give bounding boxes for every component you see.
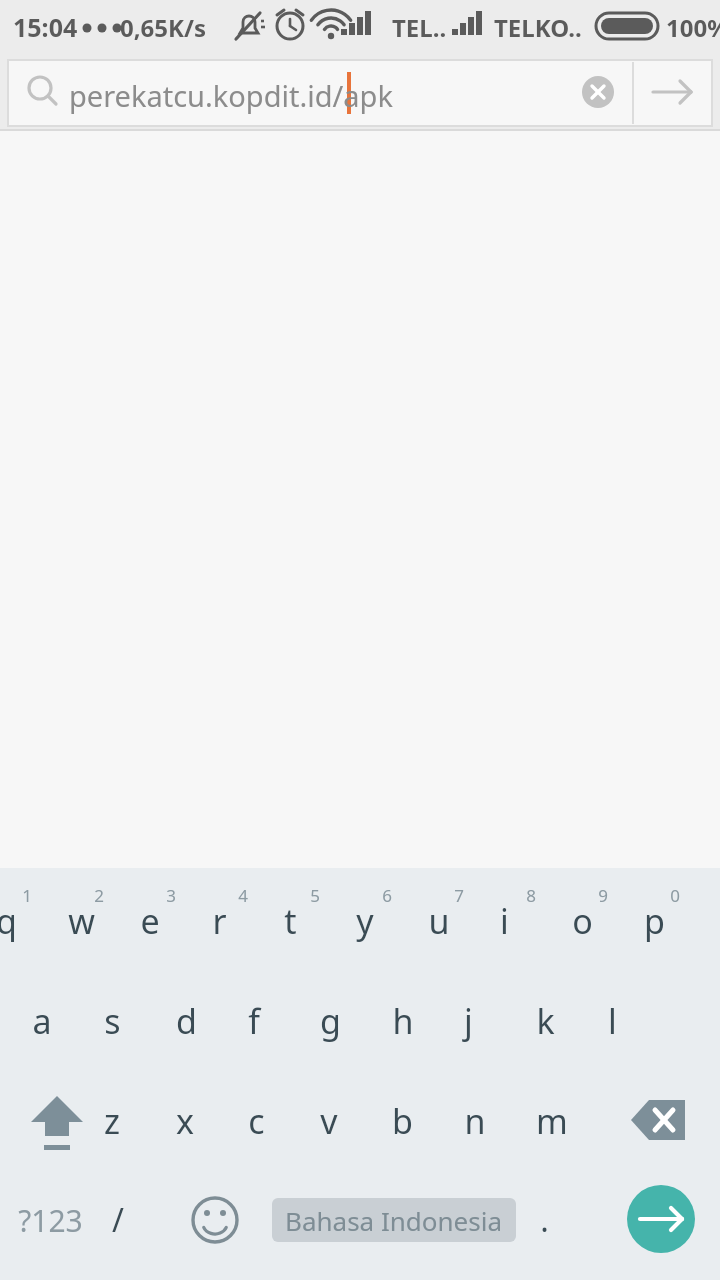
button[interactable] [612, 980, 684, 1072]
staticText: 1 [22, 884, 32, 907]
staticText: g [320, 998, 341, 1044]
button[interactable] [36, 980, 108, 1072]
button[interactable]: Shift [8, 1080, 108, 1168]
staticText: 100% [666, 11, 720, 44]
staticText: 2 [94, 884, 104, 907]
staticText: s [104, 998, 121, 1044]
button[interactable]: Backspace [612, 1080, 712, 1168]
staticText: r [212, 898, 227, 944]
staticText: y [356, 898, 374, 944]
button[interactable] [0, 880, 72, 972]
staticText: w [68, 898, 95, 944]
button[interactable]: Enter [627, 1185, 695, 1253]
staticText: Bahasa Indonesia [285, 1203, 503, 1238]
staticText: / [112, 1198, 124, 1242]
staticText: d [176, 998, 197, 1044]
button[interactable] [540, 1080, 612, 1172]
button[interactable] [216, 880, 288, 972]
staticText: . [540, 1198, 549, 1242]
button[interactable] [108, 1080, 180, 1172]
button[interactable] [540, 1184, 606, 1256]
button[interactable] [252, 1080, 324, 1172]
button[interactable] [0, 60, 640, 126]
button[interactable] [252, 980, 324, 1072]
button[interactable] [144, 880, 216, 972]
button[interactable] [112, 1184, 178, 1256]
staticText: q [0, 898, 17, 944]
staticText: 0 [670, 884, 680, 907]
staticText: b [392, 1098, 413, 1144]
button[interactable] [180, 980, 252, 1072]
staticText: ?123 [18, 1200, 83, 1241]
button[interactable] [72, 880, 144, 972]
button[interactable]: Symbols [12, 1184, 98, 1256]
staticText: 9 [598, 884, 608, 907]
button[interactable]: Emoji [184, 1184, 248, 1256]
staticText: j [464, 998, 473, 1044]
staticText: TELKO.. [494, 11, 582, 44]
staticText: 15:04 [13, 10, 78, 44]
button[interactable] [360, 880, 432, 972]
staticText: 8 [526, 884, 536, 907]
button[interactable] [576, 880, 648, 972]
staticText: 4 [238, 884, 248, 907]
button[interactable] [468, 980, 540, 1072]
staticText: v [320, 1098, 338, 1144]
staticText: 0,65K/s [120, 11, 206, 44]
staticText: n [464, 1098, 486, 1144]
staticText: i [500, 898, 509, 944]
staticText: m [536, 1098, 568, 1144]
button[interactable] [468, 1080, 540, 1172]
staticText: z [104, 1098, 120, 1144]
staticText: 7 [454, 884, 464, 907]
button[interactable] [432, 880, 504, 972]
staticText: 3 [166, 884, 176, 907]
staticText: perekatcu.kopdit.id/apk [69, 76, 393, 115]
staticText: TEL.. [392, 11, 447, 44]
staticText: u [428, 898, 450, 944]
staticText: e [140, 898, 160, 944]
staticText: p [644, 898, 665, 944]
button[interactable] [540, 980, 612, 1072]
staticText: l [608, 998, 617, 1044]
button[interactable] [180, 1080, 252, 1172]
staticText: 6 [382, 884, 392, 907]
staticText: a [32, 998, 52, 1044]
button[interactable] [396, 980, 468, 1072]
button[interactable]: Bahasa Indonesia [272, 1198, 516, 1242]
staticText: h [392, 998, 414, 1044]
staticText: f [248, 998, 260, 1044]
button[interactable] [324, 980, 396, 1072]
staticText: o [572, 898, 593, 944]
button[interactable]: Clear [568, 62, 630, 124]
staticText: t [284, 898, 297, 944]
staticText: k [536, 998, 555, 1044]
button[interactable] [108, 980, 180, 1072]
button[interactable] [648, 880, 720, 972]
staticText: c [248, 1098, 265, 1144]
button[interactable] [396, 1080, 468, 1172]
button[interactable] [324, 1080, 396, 1172]
staticText: x [176, 1098, 194, 1144]
button[interactable]: Go [636, 62, 712, 124]
staticText: 5 [310, 884, 320, 907]
button[interactable] [504, 880, 576, 972]
button[interactable] [288, 880, 360, 972]
